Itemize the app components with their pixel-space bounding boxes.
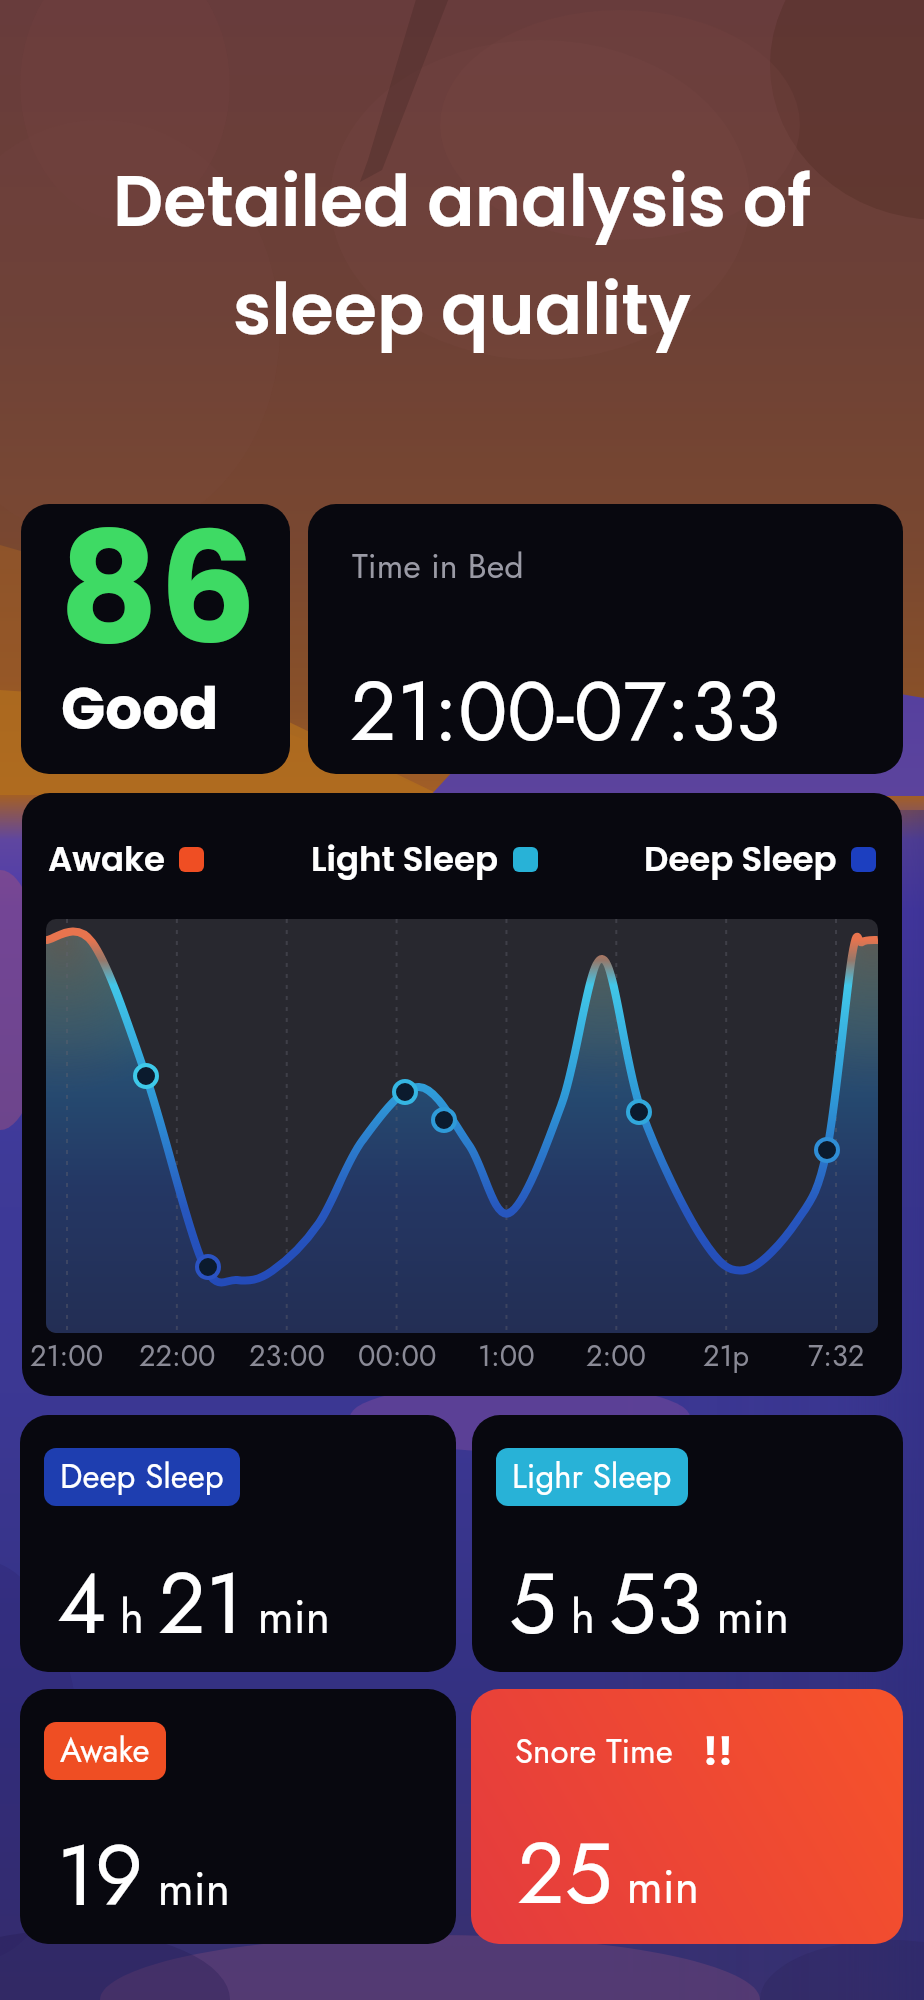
staticText: 21:00-07:33 <box>350 652 781 770</box>
staticText: 4 <box>57 1543 106 1664</box>
staticText: Detailed analysis of <box>113 152 812 250</box>
staticText: 2:00 <box>586 1335 647 1377</box>
staticText: min <box>144 1856 230 1922</box>
staticText: !! <box>703 1725 733 1778</box>
staticText: Time in Bed <box>352 542 524 591</box>
staticText: 53 <box>609 1543 703 1664</box>
staticText: 21:00 <box>30 1335 104 1377</box>
staticText: 21 <box>158 1543 244 1664</box>
staticText: 22:00 <box>139 1335 216 1377</box>
staticText: Deep Sleep <box>644 835 837 883</box>
staticText: h <box>557 1584 609 1650</box>
staticText: min <box>613 1854 699 1920</box>
staticText: 25 <box>517 1813 613 1934</box>
staticText: min <box>244 1584 330 1650</box>
staticText: 23:00 <box>249 1335 325 1377</box>
staticText: 7:32 <box>808 1335 865 1377</box>
staticText: min <box>703 1584 789 1650</box>
staticText: Light Sleep <box>311 835 499 883</box>
staticText: Deep Sleep <box>60 1453 224 1501</box>
staticText: Good <box>61 668 219 749</box>
staticText: 86 <box>59 504 257 696</box>
staticText: Lighr Sleep <box>512 1453 672 1501</box>
staticText: 21p <box>703 1335 750 1377</box>
staticText: 1:00 <box>478 1335 535 1377</box>
staticText: h <box>106 1584 158 1650</box>
staticText: Awake <box>60 1727 150 1775</box>
staticText: 00:00 <box>358 1335 437 1377</box>
staticText: sleep quality <box>233 260 691 358</box>
staticText: Awake <box>48 835 165 883</box>
staticText: 5 <box>509 1543 557 1664</box>
staticText: Snore Time <box>515 1728 673 1776</box>
staticText: 19 <box>57 1815 144 1936</box>
